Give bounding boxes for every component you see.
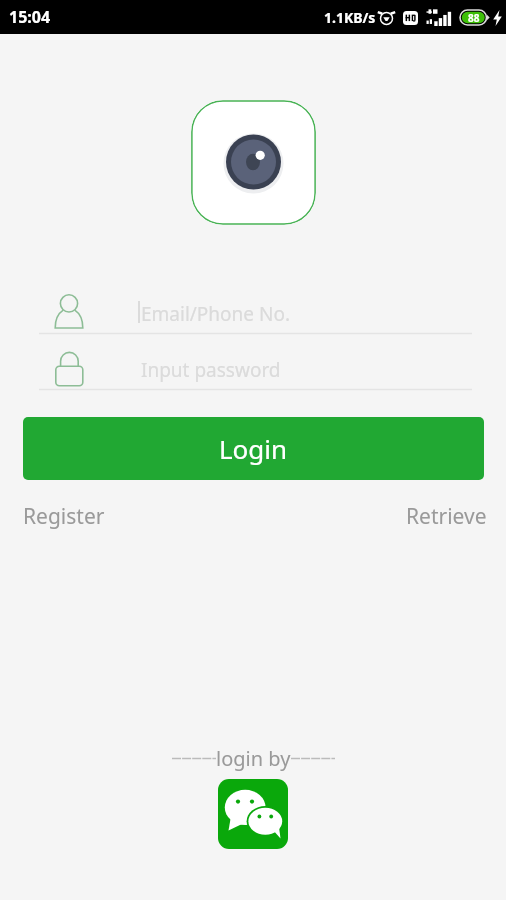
staticText: Login bbox=[219, 431, 288, 466]
button[interactable]: Retrieve bbox=[406, 500, 487, 533]
button[interactable]: Login with WeChat bbox=[218, 779, 288, 849]
staticText: Input password bbox=[141, 357, 281, 383]
button[interactable]: Login bbox=[23, 417, 484, 480]
staticText: login by bbox=[216, 745, 291, 772]
staticText: Retrieve bbox=[406, 502, 487, 531]
button[interactable]: Register bbox=[23, 500, 105, 533]
button[interactable]: App logo bbox=[191, 100, 316, 225]
staticText: Register bbox=[23, 502, 105, 531]
staticText: 88 bbox=[468, 11, 480, 25]
staticText: 1.1KB/s bbox=[324, 8, 376, 27]
staticText: Email/Phone No. bbox=[141, 301, 291, 327]
staticText: 15:04 bbox=[9, 6, 51, 28]
